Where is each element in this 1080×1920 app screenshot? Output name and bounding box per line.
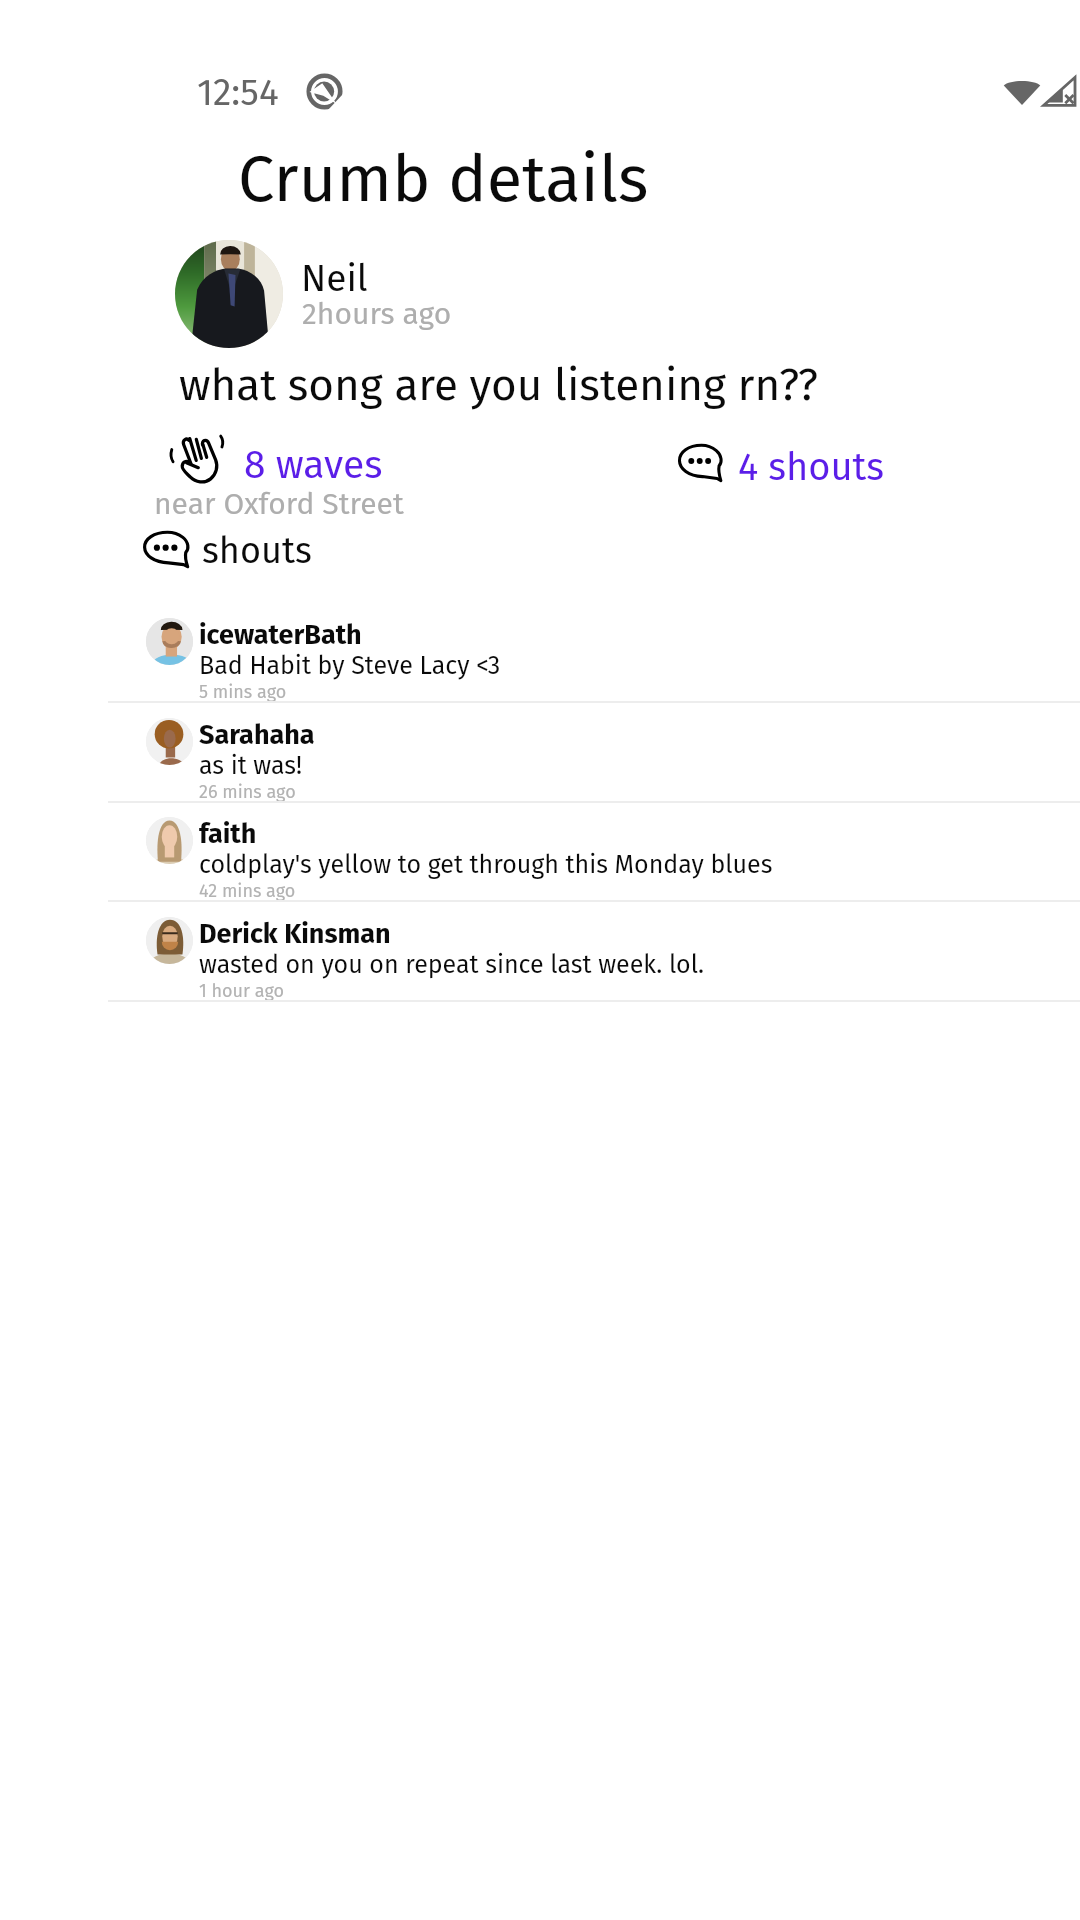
staticText: Bad Habit by Steve Lacy <3 xyxy=(199,651,501,681)
staticText: 5 mins ago xyxy=(199,681,287,703)
other: No mobile signal xyxy=(1043,74,1076,107)
button[interactable]: Derick Kinsman xyxy=(0,903,1080,1003)
staticText: 26 mins ago xyxy=(199,781,296,803)
staticText: 4 shouts xyxy=(738,444,885,490)
staticText: shouts xyxy=(202,529,312,572)
staticText: as it was! xyxy=(199,751,303,781)
staticText: near Oxford Street xyxy=(154,486,404,522)
other: Auto-rotate off xyxy=(306,73,343,110)
button[interactable]: Sarahaha xyxy=(0,704,1080,804)
other: Wi-Fi xyxy=(1003,73,1041,111)
staticText: Sarahaha xyxy=(199,719,315,751)
staticText: 42 mins ago xyxy=(199,880,296,902)
staticText: icewaterBath xyxy=(199,619,362,651)
button[interactable]: 4 shouts xyxy=(670,434,888,490)
staticText: what song are you listening rn?? xyxy=(179,359,818,412)
staticText: faith xyxy=(199,818,257,850)
staticText: 2hours ago xyxy=(302,296,452,332)
other: Shouts xyxy=(141,530,194,571)
staticText: wasted on you on repeat since last week.… xyxy=(199,950,705,980)
staticText: Neil xyxy=(301,256,368,300)
button[interactable]: icewaterBath xyxy=(0,604,1080,704)
button[interactable]: 8 waves xyxy=(162,428,386,488)
staticText: 1 hour ago xyxy=(199,980,285,1002)
button[interactable]: Neil xyxy=(175,240,525,350)
staticText: Derick Kinsman xyxy=(199,918,391,950)
staticText: 8 waves xyxy=(244,442,383,489)
staticText: Crumb details xyxy=(238,140,649,218)
staticText: coldplay's yellow to get through this Mo… xyxy=(199,850,773,880)
button[interactable]: faith xyxy=(0,803,1080,903)
staticText: 12:54 xyxy=(197,70,279,114)
